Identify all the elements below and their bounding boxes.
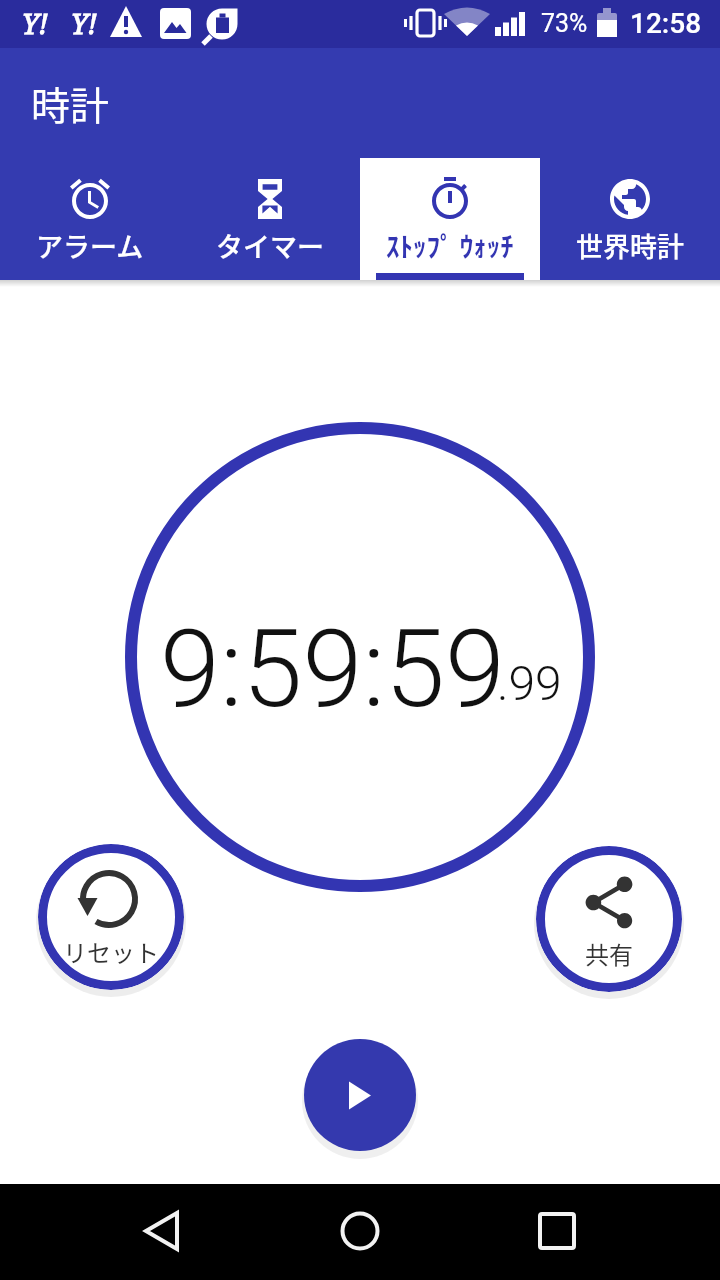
button[interactable]: 世界時計 <box>540 158 720 280</box>
staticText: タイマー <box>216 226 324 265</box>
button[interactable] <box>525 1200 589 1264</box>
button[interactable]: ｽﾄｯﾌﾟ ｳｫｯﾁ <box>360 158 540 280</box>
button[interactable]: タイマー <box>180 158 360 280</box>
staticText: ｽﾄｯﾌﾟ ｳｫｯﾁ <box>386 226 514 265</box>
button[interactable]: リセット <box>38 844 184 990</box>
button[interactable] <box>130 1200 194 1264</box>
button[interactable] <box>304 1039 416 1151</box>
staticText: 12:58 <box>630 7 702 40</box>
button[interactable]: 共有 <box>536 846 682 992</box>
staticText: .99 <box>497 655 562 711</box>
staticText: 世界時計 <box>576 226 684 265</box>
staticText: Y! <box>71 5 97 42</box>
staticText: 共有 <box>585 936 633 971</box>
staticText: 時計 <box>31 75 110 131</box>
staticText: 9:59:59 <box>160 606 505 733</box>
staticText: リセット <box>63 934 159 969</box>
staticText: Y! <box>22 5 48 42</box>
button[interactable] <box>328 1200 392 1264</box>
staticText: アラーム <box>36 226 144 265</box>
staticText: 73% <box>541 9 588 38</box>
button[interactable]: アラーム <box>0 158 180 280</box>
